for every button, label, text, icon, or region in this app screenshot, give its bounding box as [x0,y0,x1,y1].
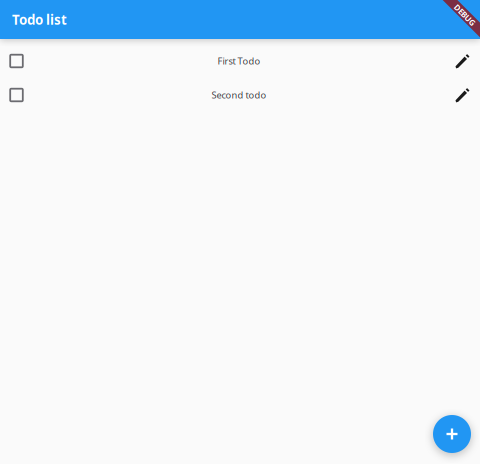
button[interactable]: Toggle Second todo [6,78,27,112]
button[interactable]: First Todo [0,44,480,78]
staticText: First Todo [217,55,260,67]
button[interactable]: Toggle First Todo [6,44,27,78]
staticText: Second todo [211,89,266,101]
button[interactable]: Edit Second todo [450,78,475,112]
button[interactable]: Edit First Todo [450,44,475,78]
staticText: DEBUG [451,10,478,20]
staticText: Todo list [12,11,67,28]
button[interactable]: Second todo [0,78,480,112]
button[interactable]: Add todo [433,415,471,453]
